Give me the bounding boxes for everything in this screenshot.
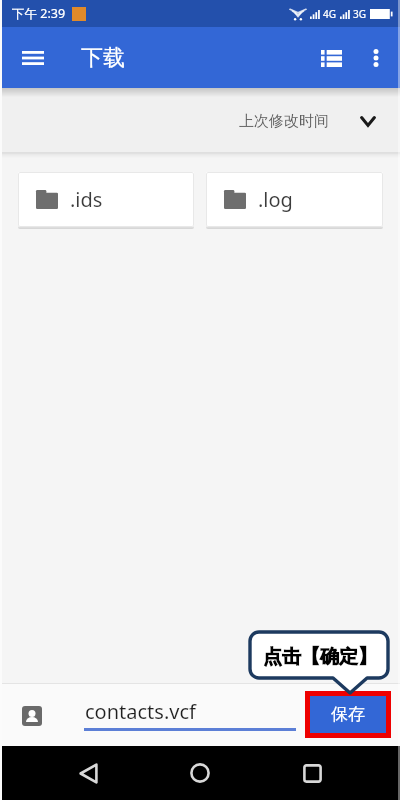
button[interactable]: .ids — [18, 172, 194, 227]
button[interactable]: Menu — [11, 36, 55, 80]
staticText: 保存 — [331, 704, 365, 725]
staticText: 4G — [323, 7, 336, 21]
staticText: .log — [258, 186, 293, 213]
button[interactable]: 保存 — [305, 691, 391, 738]
staticText: 3G — [353, 7, 366, 21]
staticText: 下午 2:39 — [12, 5, 66, 22]
button[interactable]: 上次修改时间 — [239, 112, 376, 131]
staticText: 上次修改时间 — [239, 112, 329, 131]
staticText: 下载 — [81, 44, 125, 72]
button[interactable]: .log — [206, 172, 383, 227]
staticText: .ids — [70, 186, 103, 213]
staticText: contacts.vcf — [85, 698, 196, 725]
button[interactable]: More options — [355, 37, 397, 79]
button[interactable]: Home — [176, 749, 224, 797]
button[interactable]: Back — [64, 749, 112, 797]
button[interactable]: List view — [310, 37, 352, 79]
staticText: 点击【确定】 — [263, 645, 377, 669]
button[interactable]: Recents — [288, 749, 336, 797]
